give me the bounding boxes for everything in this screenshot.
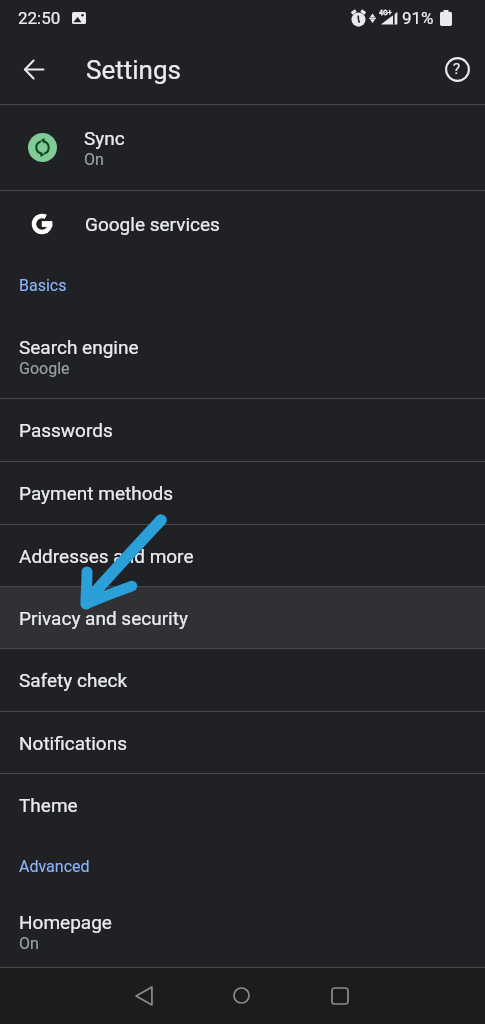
- staticText: 4G+: [379, 9, 392, 17]
- button[interactable]: Theme: [0, 774, 485, 836]
- button[interactable]: Google services: [0, 191, 485, 256]
- staticText: Payment methods: [19, 482, 174, 504]
- button[interactable]: Search engine: [0, 315, 485, 398]
- button[interactable]: Recent apps: [314, 970, 365, 1021]
- staticText: On: [84, 150, 104, 169]
- staticText: 91%: [402, 8, 434, 28]
- staticText: On: [19, 934, 39, 953]
- staticText: Notifications: [19, 732, 128, 754]
- staticText: Google services: [85, 213, 220, 235]
- staticText: Search engine: [19, 336, 139, 358]
- button[interactable]: Back: [118, 970, 169, 1021]
- staticText: Safety check: [19, 669, 128, 691]
- button[interactable]: Notifications: [0, 712, 485, 773]
- button[interactable]: Sync: [0, 105, 485, 190]
- button[interactable]: Homepage: [0, 896, 485, 967]
- staticText: Addresses and more: [19, 545, 194, 567]
- staticText: Sync: [84, 127, 125, 149]
- staticText: Theme: [19, 794, 78, 816]
- button[interactable]: Passwords: [0, 399, 485, 461]
- staticText: Passwords: [19, 419, 113, 441]
- staticText: Advanced: [19, 857, 90, 876]
- staticText: Privacy and security: [19, 607, 188, 629]
- button[interactable]: Privacy and security: [0, 587, 485, 648]
- button[interactable]: Safety check: [0, 649, 485, 711]
- staticText: 22:50: [18, 8, 61, 28]
- button[interactable]: Navigate up: [0, 35, 67, 104]
- staticText: Google: [19, 359, 70, 378]
- button[interactable]: Addresses and more: [0, 525, 485, 586]
- staticText: Settings: [86, 55, 181, 85]
- staticText: Homepage: [19, 911, 112, 933]
- button[interactable]: Home: [216, 970, 267, 1021]
- button[interactable]: Help and feedback: [429, 35, 485, 104]
- staticText: ?: [453, 60, 461, 78]
- button[interactable]: Payment methods: [0, 462, 485, 524]
- staticText: Basics: [19, 276, 67, 295]
